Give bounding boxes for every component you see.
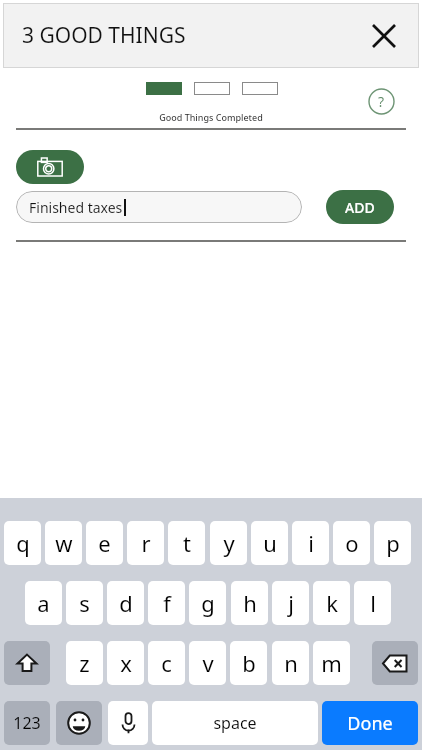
button[interactable]: Dictate xyxy=(108,701,148,745)
staticText: z xyxy=(79,648,90,678)
staticText: e xyxy=(98,528,111,558)
button[interactable]: Emoji xyxy=(56,701,102,745)
button[interactable]: f xyxy=(148,581,185,625)
staticText: j xyxy=(288,588,294,618)
staticText: f xyxy=(163,588,171,618)
staticText: u xyxy=(263,528,277,558)
staticText: r xyxy=(141,528,151,558)
button[interactable]: o xyxy=(333,521,370,565)
staticText: ADD xyxy=(345,198,375,217)
button[interactable]: Shift xyxy=(4,641,50,685)
button[interactable]: e xyxy=(86,521,123,565)
button[interactable]: Close xyxy=(363,15,405,57)
button[interactable]: r xyxy=(127,521,164,565)
button[interactable]: ADD xyxy=(326,190,394,224)
button[interactable]: Help xyxy=(368,88,395,115)
staticText: x xyxy=(120,648,132,678)
staticText: Finished taxes xyxy=(29,198,123,217)
staticText: Good Things Completed xyxy=(0,111,422,123)
staticText: m xyxy=(321,648,342,678)
button[interactable]: m xyxy=(313,641,350,685)
button[interactable]: j xyxy=(272,581,309,625)
button[interactable]: Delete xyxy=(372,641,418,685)
button[interactable]: g xyxy=(189,581,226,625)
button[interactable]: c xyxy=(148,641,185,685)
button[interactable]: s xyxy=(66,581,103,625)
staticText: t xyxy=(183,528,191,558)
button[interactable]: space xyxy=(152,701,318,745)
button[interactable]: a xyxy=(25,581,62,625)
staticText: ? xyxy=(378,92,385,111)
staticText: space xyxy=(213,712,257,734)
staticText: o xyxy=(345,528,359,558)
button[interactable]: Finished taxes xyxy=(16,191,302,223)
staticText: q xyxy=(16,528,30,558)
staticText: p xyxy=(386,528,400,558)
staticText: h xyxy=(243,588,257,618)
button[interactable] xyxy=(242,82,278,95)
button[interactable]: h xyxy=(231,581,268,625)
button[interactable]: x xyxy=(107,641,144,685)
button[interactable]: n xyxy=(272,641,309,685)
staticText: s xyxy=(79,588,90,618)
staticText: v xyxy=(202,648,214,678)
button[interactable] xyxy=(194,82,230,95)
button[interactable]: w xyxy=(45,521,82,565)
staticText: 3 GOOD THINGS xyxy=(22,21,186,50)
button[interactable]: b xyxy=(230,641,267,685)
staticText: a xyxy=(37,588,50,618)
staticText: d xyxy=(119,588,133,618)
button[interactable]: u xyxy=(251,521,288,565)
button[interactable]: 123 xyxy=(4,701,50,745)
button[interactable]: i xyxy=(292,521,329,565)
staticText: l xyxy=(370,588,376,618)
button[interactable]: z xyxy=(66,641,103,685)
button[interactable]: t xyxy=(168,521,205,565)
button[interactable]: q xyxy=(4,521,41,565)
staticText: 123 xyxy=(13,712,41,734)
button[interactable]: l xyxy=(354,581,391,625)
staticText: w xyxy=(55,528,73,558)
staticText: y xyxy=(223,528,235,558)
button[interactable]: Add photo xyxy=(16,150,84,184)
staticText: n xyxy=(284,648,298,678)
button[interactable]: k xyxy=(313,581,350,625)
button[interactable]: Done xyxy=(322,701,418,745)
staticText: Done xyxy=(347,711,393,736)
button[interactable]: p xyxy=(374,521,411,565)
button[interactable]: d xyxy=(107,581,144,625)
staticText: c xyxy=(161,648,172,678)
staticText: i xyxy=(308,528,314,558)
staticText: k xyxy=(326,588,338,618)
staticText: g xyxy=(201,588,215,618)
button[interactable]: y xyxy=(210,521,247,565)
button[interactable]: v xyxy=(189,641,226,685)
staticText: b xyxy=(242,648,256,678)
